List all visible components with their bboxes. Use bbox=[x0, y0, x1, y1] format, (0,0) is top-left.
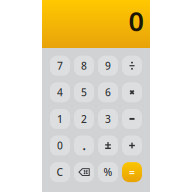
staticText: . bbox=[82, 137, 85, 154]
button[interactable]: = bbox=[122, 162, 142, 182]
staticText: 4 bbox=[57, 85, 63, 99]
button[interactable]: 2 bbox=[74, 109, 94, 129]
button[interactable]: 1 bbox=[50, 109, 70, 129]
staticText: 0 bbox=[57, 138, 63, 152]
staticText: 7 bbox=[57, 59, 63, 73]
button[interactable]: Subtract bbox=[122, 109, 142, 129]
button[interactable]: % bbox=[98, 162, 118, 182]
button[interactable]: 7 bbox=[50, 56, 70, 76]
button[interactable]: . bbox=[74, 135, 94, 155]
staticText: 6 bbox=[105, 85, 111, 99]
button[interactable]: 6 bbox=[98, 82, 118, 102]
staticText: 1 bbox=[57, 112, 63, 126]
staticText: = bbox=[129, 165, 135, 179]
staticText: 0 bbox=[128, 2, 143, 39]
button[interactable]: 8 bbox=[74, 56, 94, 76]
button[interactable]: Plus minus bbox=[98, 135, 118, 155]
staticText: 2 bbox=[81, 112, 87, 126]
button[interactable]: 0 bbox=[50, 135, 70, 155]
button[interactable]: 5 bbox=[74, 82, 94, 102]
button[interactable]: 9 bbox=[98, 56, 118, 76]
staticText: 9 bbox=[105, 59, 111, 73]
button[interactable]: Multiply bbox=[122, 82, 142, 102]
button[interactable]: Delete bbox=[74, 162, 94, 182]
staticText: 8 bbox=[81, 59, 87, 73]
button[interactable]: 3 bbox=[98, 109, 118, 129]
staticText: 3 bbox=[105, 112, 111, 126]
button[interactable]: Add bbox=[122, 135, 142, 155]
button[interactable]: C bbox=[50, 162, 70, 182]
staticText: C bbox=[56, 165, 63, 179]
button[interactable]: 4 bbox=[50, 82, 70, 102]
staticText: 5 bbox=[81, 85, 87, 99]
button[interactable]: Divide bbox=[122, 56, 142, 76]
staticText: % bbox=[103, 165, 112, 179]
